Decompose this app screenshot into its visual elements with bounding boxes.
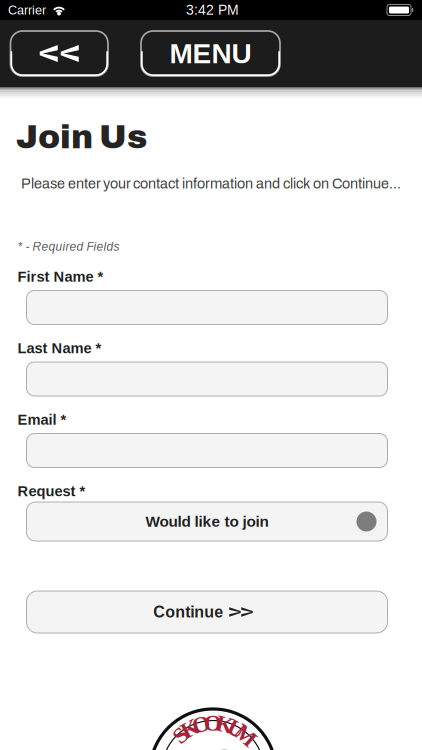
staticText: O — [192, 712, 210, 737]
staticText: MENU — [169, 38, 251, 69]
staticText: M — [235, 723, 256, 748]
button[interactable]: Continue — [26, 591, 387, 633]
staticText: * - Required Fields — [17, 240, 119, 253]
button[interactable]: Would like to join — [26, 502, 387, 541]
staticText: Would like to join — [145, 513, 268, 530]
staticText: Request * — [17, 483, 85, 499]
staticText: K — [181, 716, 199, 741]
staticText: Email * — [17, 411, 66, 428]
staticText: First Name * — [17, 268, 103, 285]
button[interactable]: MENU — [141, 31, 280, 76]
staticText: O — [204, 710, 222, 735]
staticText: Join Us — [16, 119, 147, 155]
staticText: S — [174, 723, 187, 748]
staticText: Continue — [153, 603, 223, 621]
staticText: Carrier — [8, 3, 46, 17]
staticText: U — [228, 716, 244, 741]
staticText: K — [216, 712, 234, 737]
staticText: Last Name * — [17, 340, 101, 356]
staticText: 3:42 PM — [186, 2, 239, 18]
button[interactable]: Back — [10, 31, 108, 76]
staticText: Please enter your contact information an… — [21, 176, 401, 192]
